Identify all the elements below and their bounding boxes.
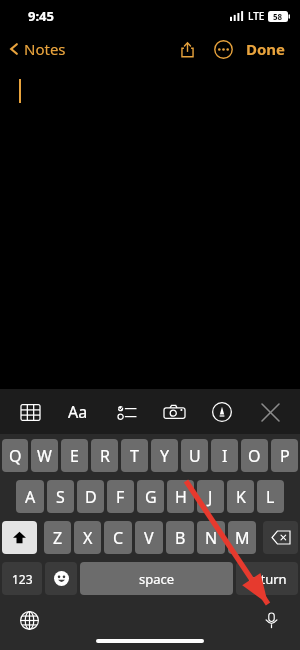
staticText: 58 [273,11,283,22]
button[interactable]: Y [151,439,178,472]
button[interactable]: A [16,480,44,513]
staticText: T [130,445,139,467]
staticText: G [145,486,157,508]
button[interactable]: R [91,439,118,472]
staticText: Q [9,445,22,467]
staticText: P [280,445,290,467]
button[interactable]: Text format [58,392,98,432]
button[interactable]: Done [242,35,290,63]
button[interactable]: Z [44,521,71,554]
staticText: L [266,486,275,508]
button[interactable]: M [228,521,256,554]
staticText: E [70,445,79,467]
button[interactable]: Dictation [256,605,286,635]
button[interactable]: T [121,439,148,472]
staticText: Notes [24,39,66,59]
button[interactable]: H [167,480,194,513]
staticText: D [85,486,97,508]
button[interactable]: Switch keyboard [14,605,44,635]
staticText: A [25,486,36,508]
button[interactable]: Q [2,439,28,472]
button[interactable]: Markup [202,392,242,432]
button[interactable]: C [104,521,132,554]
button[interactable]: Backspace [263,521,298,554]
staticText: H [175,486,187,508]
staticText: I [222,445,228,467]
button[interactable]: N [197,521,225,554]
staticText: N [205,527,218,549]
staticText: W [37,445,52,467]
staticText: J [208,486,213,508]
staticText: Done [246,39,286,59]
staticText: M [235,527,250,549]
button[interactable]: S [47,480,74,513]
staticText: LTE [248,9,265,23]
button[interactable]: Share [172,34,202,64]
staticText: Z [53,527,63,549]
button[interactable]: J [197,480,224,513]
button[interactable]: Camera [154,392,194,432]
button[interactable]: Close keyboard [250,392,290,432]
button[interactable]: Table [10,392,50,432]
button[interactable]: L [257,480,284,513]
button[interactable]: U [181,439,208,472]
button[interactable]: G [137,480,164,513]
button[interactable]: E [61,439,88,472]
staticText: Y [160,445,170,467]
staticText: V [144,527,154,549]
staticText: B [175,527,186,549]
button[interactable]: K [227,480,254,513]
staticText: space [139,570,175,588]
button[interactable]: W [31,439,58,472]
staticText: F [116,486,125,508]
button[interactable]: O [241,439,268,472]
button[interactable]: Notes [7,39,66,59]
button[interactable]: D [77,480,104,513]
button[interactable]: Checklist [106,392,146,432]
staticText: U [189,445,201,467]
staticText: S [56,486,65,508]
staticText: return [248,570,287,588]
staticText: O [248,445,261,467]
staticText: C [113,527,124,549]
staticText: 123 [12,571,33,587]
button[interactable]: Emoji [45,562,77,595]
staticText: R [100,445,110,467]
button[interactable]: F [107,480,134,513]
staticText: K [236,486,246,508]
button[interactable]: I [211,439,238,472]
staticText: Aa [68,401,88,423]
button[interactable]: P [271,439,298,472]
button[interactable]: Shift [2,521,37,554]
button[interactable]: space [80,562,233,595]
button[interactable]: V [135,521,163,554]
button[interactable]: X [74,521,101,554]
staticText: X [83,527,93,549]
button[interactable]: 123 [2,562,42,595]
button[interactable]: return [236,562,298,595]
button[interactable]: B [166,521,194,554]
button[interactable]: More options [208,34,238,64]
staticText: 9:45 [28,7,54,25]
